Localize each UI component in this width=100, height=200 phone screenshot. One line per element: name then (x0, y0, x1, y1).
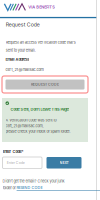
staticText: A verification code was sent to (5, 118, 56, 122)
staticText: please check your inbox or spam folder. (5, 129, 70, 134)
staticText: VIA BENEFITS (28, 5, 55, 9)
button[interactable]: NEXT (46, 157, 81, 168)
button[interactable]: Enter Code (2, 157, 42, 168)
staticText: Email Address (5, 57, 29, 62)
staticText: Code Sent, Don't Leave This Page! (10, 107, 69, 112)
staticText: cert_21@mailsac.com (5, 67, 43, 72)
staticText: REQUEST CODE (31, 82, 59, 87)
button[interactable]: RESEND CODE (17, 185, 100, 191)
button[interactable]: REQUEST CODE (2, 76, 88, 93)
staticText: RESEND CODE (17, 185, 43, 190)
staticText: NEXT (59, 161, 68, 165)
staticText: folder or (3, 186, 17, 190)
staticText: Didn't get the email? Check your junk (3, 179, 65, 183)
staticText: Enter Code (7, 161, 25, 165)
staticText: Request an access verification code that… (6, 40, 76, 45)
staticText: cert_21@mailsac.com, (5, 124, 43, 128)
staticText: Request Code (6, 21, 40, 28)
staticText: sent to your email. (6, 48, 36, 53)
staticText: Enter Code* (3, 149, 24, 154)
